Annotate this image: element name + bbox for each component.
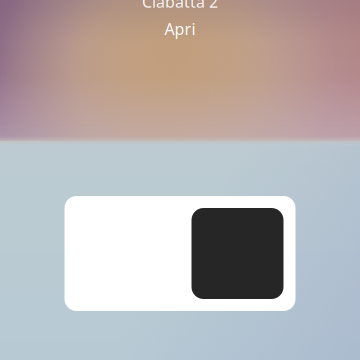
button[interactable]: Apri Ciabatta 2 [64,196,295,311]
staticText: Apri [164,18,195,39]
staticText: Ciabatta 2 [142,0,218,12]
